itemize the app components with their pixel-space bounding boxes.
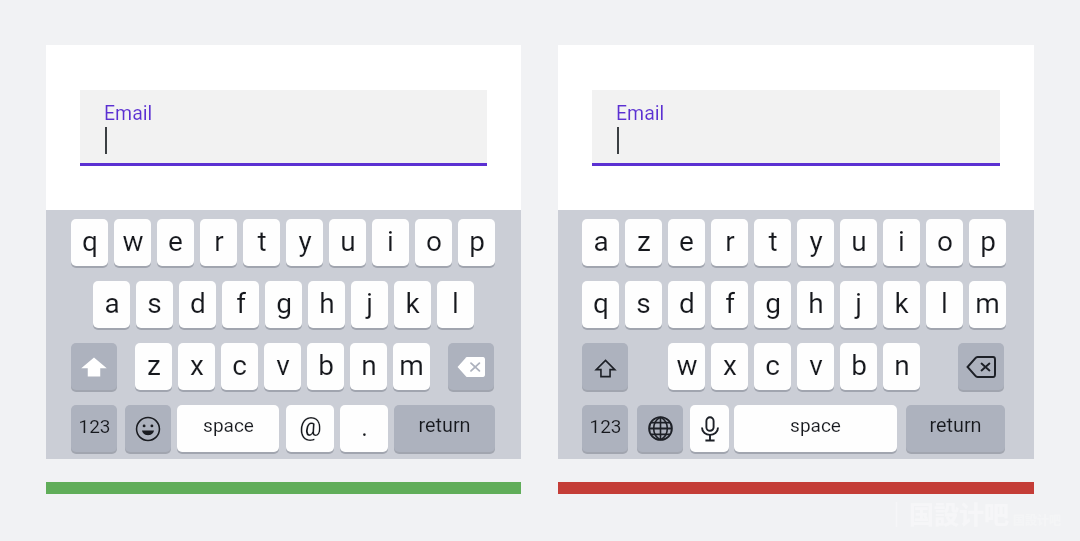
button[interactable]: z [625, 219, 662, 268]
button[interactable]: Email [592, 90, 1000, 163]
button[interactable]: return [906, 405, 1005, 454]
button[interactable]: r [200, 219, 237, 268]
button[interactable]: u [840, 219, 877, 268]
button[interactable]: i [372, 219, 409, 268]
button[interactable]: s [136, 281, 173, 330]
staticText: o [426, 225, 442, 258]
button[interactable]: c [221, 343, 258, 392]
button[interactable]: p [969, 219, 1006, 268]
staticText: e [168, 225, 183, 258]
button[interactable]: i [883, 219, 920, 268]
staticText: k [405, 287, 420, 320]
staticText: b [318, 349, 334, 382]
button[interactable]: Shift [582, 343, 628, 392]
button[interactable]: return [394, 405, 495, 454]
staticText: x [723, 349, 737, 382]
staticText: space [203, 414, 254, 436]
staticText: r [214, 225, 224, 258]
staticText: o [937, 225, 953, 258]
button[interactable]: space [734, 405, 897, 454]
button[interactable]: v [797, 343, 834, 392]
button[interactable]: t [243, 219, 280, 268]
staticText: p [980, 225, 996, 258]
button[interactable]: o [415, 219, 452, 268]
button[interactable]: y [797, 219, 834, 268]
button[interactable]: Change language [637, 405, 683, 454]
button[interactable]: w [668, 343, 705, 392]
button[interactable]: o [926, 219, 963, 268]
button[interactable]: c [754, 343, 791, 392]
staticText: j [855, 287, 862, 320]
button[interactable]: j [351, 281, 388, 330]
staticText: . [361, 413, 368, 442]
staticText: z [147, 349, 161, 382]
staticText: n [894, 349, 910, 382]
staticText: g [276, 287, 292, 320]
button[interactable]: . [340, 405, 388, 454]
button[interactable]: l [437, 281, 474, 330]
staticText: b [851, 349, 867, 382]
button[interactable]: k [883, 281, 920, 330]
button[interactable]: p [458, 219, 495, 268]
button[interactable]: j [840, 281, 877, 330]
button[interactable]: d [179, 281, 216, 330]
button[interactable]: y [286, 219, 323, 268]
staticText: x [190, 349, 204, 382]
button[interactable]: q [582, 281, 619, 330]
button[interactable]: Backspace [448, 343, 494, 392]
button[interactable]: b [307, 343, 344, 392]
staticText: h [319, 287, 335, 320]
staticText: s [147, 287, 162, 320]
button[interactable]: b [840, 343, 877, 392]
button[interactable]: Email [80, 90, 487, 163]
button[interactable]: f [711, 281, 748, 330]
staticText: t [257, 225, 267, 258]
button[interactable]: Backspace [958, 343, 1004, 392]
staticText: a [104, 287, 120, 320]
staticText: u [851, 225, 867, 258]
button[interactable]: f [222, 281, 259, 330]
button[interactable]: k [394, 281, 431, 330]
button[interactable]: x [178, 343, 215, 392]
button[interactable]: s [625, 281, 662, 330]
staticText: i [898, 225, 905, 258]
button[interactable]: a [93, 281, 130, 330]
button[interactable]: a [582, 219, 619, 268]
button[interactable]: e [157, 219, 194, 268]
staticText: 123 [78, 415, 111, 437]
button[interactable]: l [926, 281, 963, 330]
button[interactable]: v [264, 343, 301, 392]
button[interactable]: m [393, 343, 430, 392]
button[interactable]: q [71, 219, 108, 268]
button[interactable]: 123 [582, 405, 628, 454]
button[interactable]: @ [286, 405, 334, 454]
staticText: f [725, 287, 735, 320]
button[interactable]: g [754, 281, 791, 330]
button[interactable]: h [308, 281, 345, 330]
button[interactable]: space [177, 405, 279, 454]
button[interactable]: z [135, 343, 172, 392]
button[interactable]: Shift [71, 343, 117, 392]
button[interactable]: 123 [71, 405, 117, 454]
button[interactable]: n [883, 343, 920, 392]
button[interactable]: n [350, 343, 387, 392]
button[interactable]: Emoji [125, 405, 171, 454]
staticText: g [765, 287, 781, 320]
button[interactable]: t [754, 219, 791, 268]
button[interactable]: m [969, 281, 1006, 330]
staticText: l [941, 287, 948, 320]
button[interactable]: x [711, 343, 748, 392]
button[interactable]: g [265, 281, 302, 330]
button[interactable]: Voice input [690, 405, 729, 454]
staticText: q [593, 287, 609, 320]
button[interactable]: u [329, 219, 366, 268]
staticText: c [232, 349, 247, 382]
button[interactable]: e [668, 219, 705, 268]
button[interactable]: r [711, 219, 748, 268]
staticText: m [399, 349, 424, 382]
button[interactable]: w [114, 219, 151, 268]
button[interactable]: d [668, 281, 705, 330]
button[interactable]: h [797, 281, 834, 330]
